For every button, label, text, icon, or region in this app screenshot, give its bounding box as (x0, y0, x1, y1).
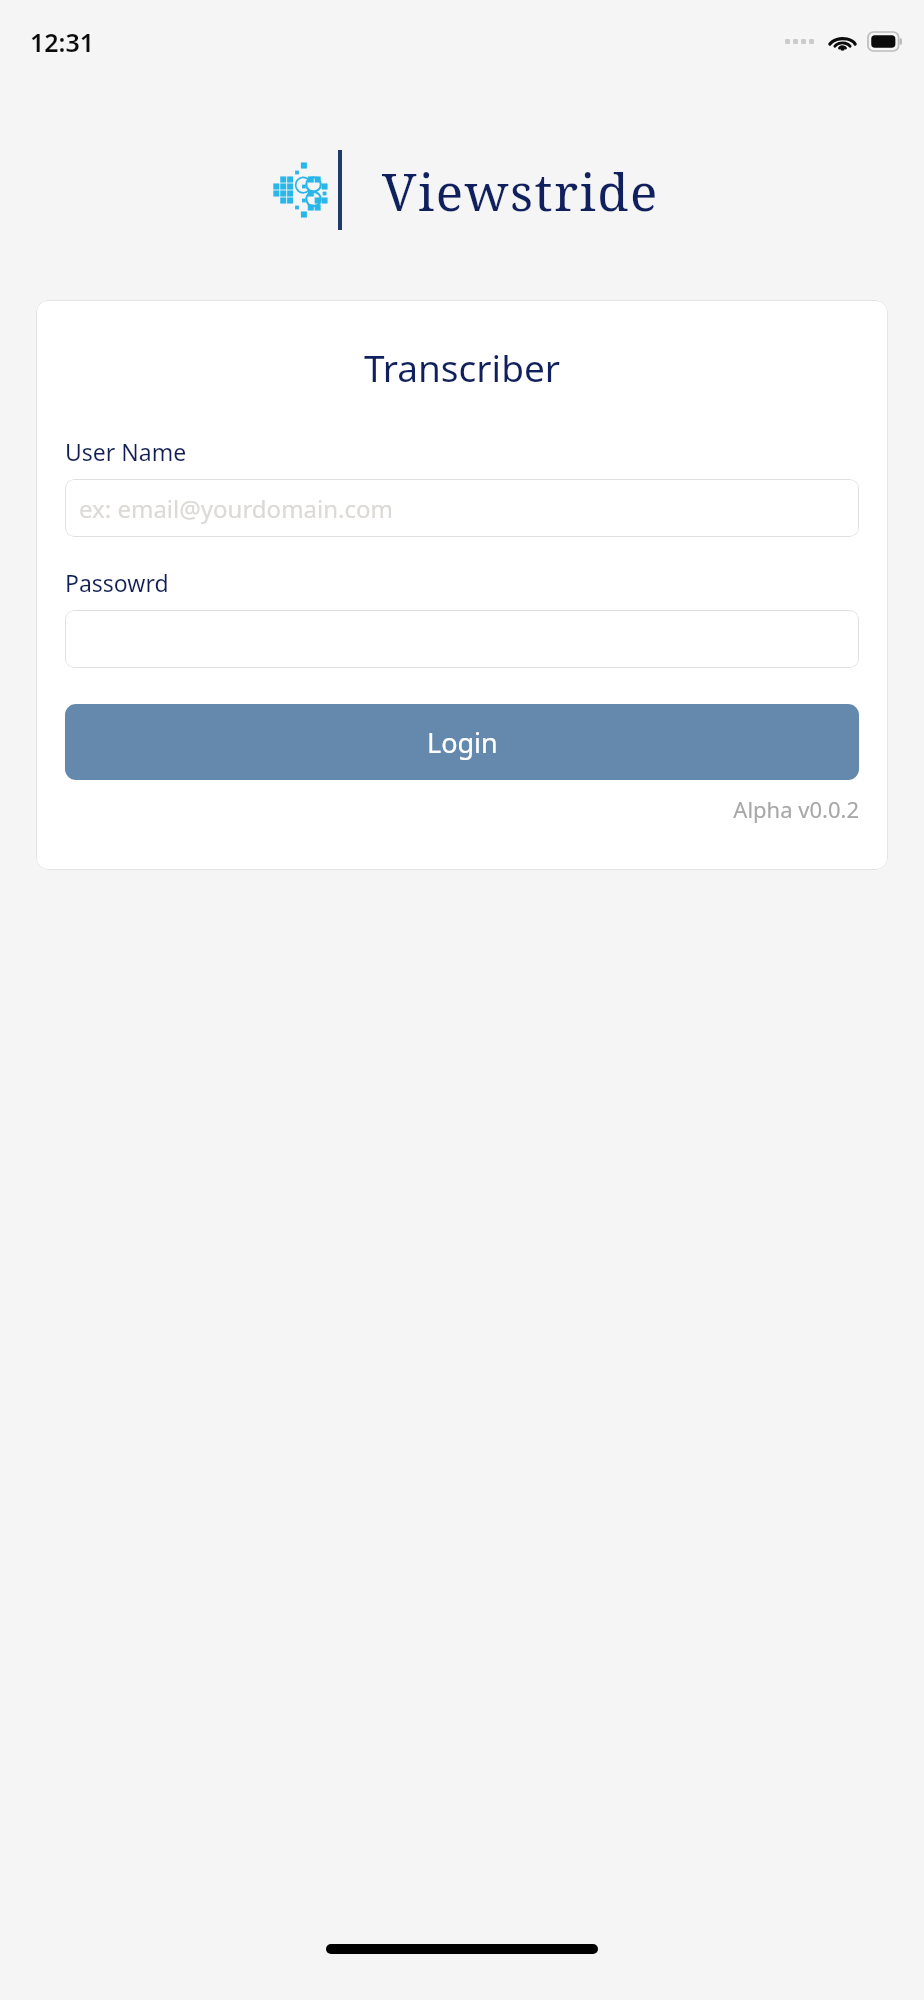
staticText: Transcriber (65, 342, 859, 392)
button[interactable]: ex: email@yourdomain.com (65, 479, 859, 537)
button[interactable]: Login (65, 704, 859, 780)
staticText: Viewstride (382, 156, 659, 225)
staticText: Passowrd (65, 567, 169, 598)
staticText: 12:31 (30, 25, 95, 59)
staticText: Alpha v0.0.2 (65, 794, 859, 824)
button[interactable] (65, 610, 859, 668)
staticText: Login (427, 724, 498, 761)
staticText: ex: email@yourdomain.com (79, 492, 393, 525)
staticText: User Name (65, 436, 187, 467)
other: Home (0, 1944, 924, 2000)
